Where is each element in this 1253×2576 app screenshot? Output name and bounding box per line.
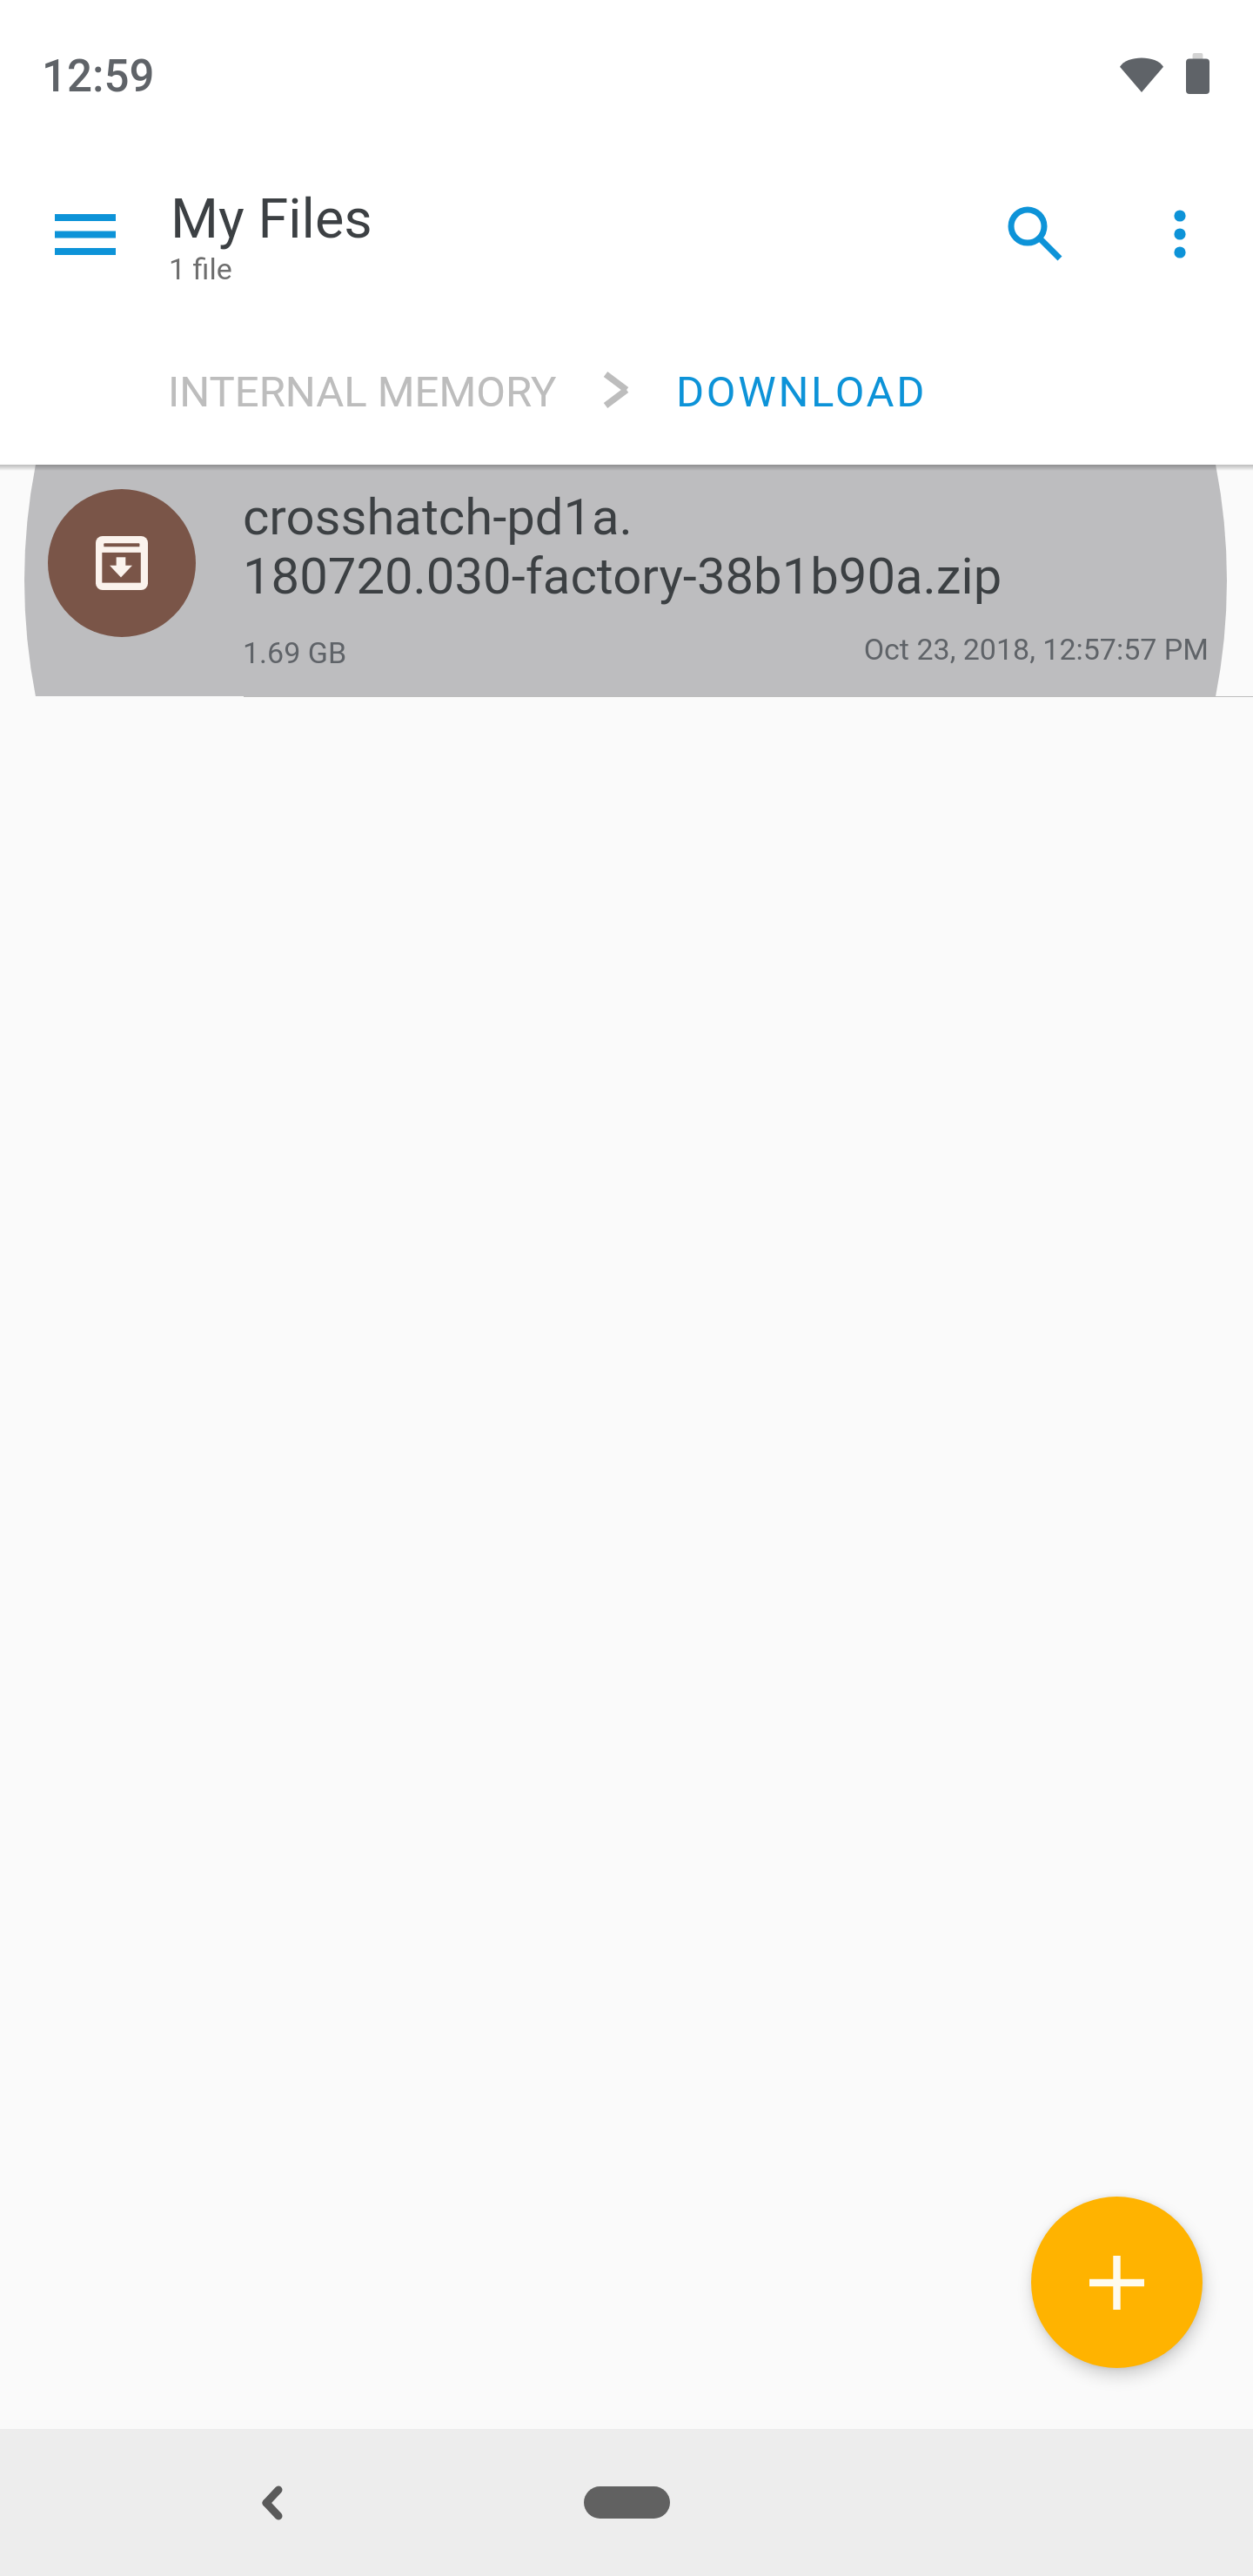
button[interactable]: Search — [968, 167, 1099, 298]
staticText: Oct 23, 2018, 12:57:57 PM — [0, 632, 1209, 667]
button[interactable]: DOWNLOAD — [641, 346, 962, 437]
button[interactable]: Add — [1031, 2197, 1203, 2368]
button[interactable]: More options — [1115, 169, 1245, 299]
button[interactable]: crosshatch-pd1a. 180720.030-factory-38b1… — [0, 465, 1253, 696]
staticText: 1.69 GB — [243, 635, 347, 670]
staticText: My Files — [171, 187, 372, 252]
staticText: crosshatch-pd1a. 180720.030-factory-38b1… — [243, 487, 1002, 606]
staticText: 1 file — [169, 252, 232, 286]
staticText: 12:59 — [42, 50, 155, 103]
button[interactable]: Open navigation drawer — [20, 169, 151, 299]
button[interactable]: Back — [220, 2451, 325, 2555]
button[interactable]: INTERNAL MEMORY — [133, 346, 592, 437]
button[interactable]: Home — [584, 2486, 670, 2519]
staticText: DOWNLOAD — [676, 367, 928, 417]
staticText: INTERNAL MEMORY — [168, 367, 557, 417]
